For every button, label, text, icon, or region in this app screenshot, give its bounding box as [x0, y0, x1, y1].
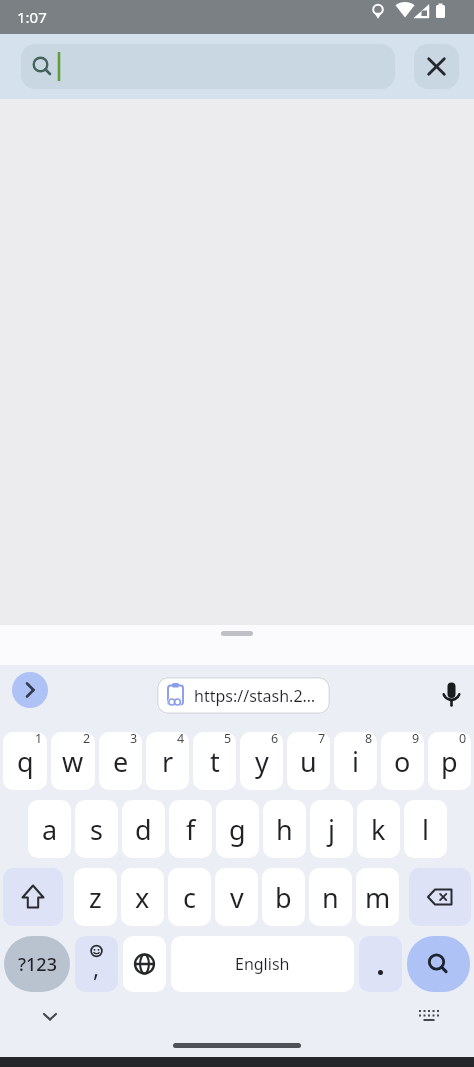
button[interactable]: u — [287, 732, 330, 790]
button[interactable] — [359, 936, 402, 992]
staticText: k — [371, 811, 386, 848]
staticText: 1:07 — [17, 7, 47, 27]
button[interactable]: c — [168, 868, 211, 926]
staticText: h — [276, 811, 293, 848]
button[interactable]: q — [3, 732, 47, 790]
staticText: 1 — [35, 732, 43, 747]
staticText: w — [62, 743, 84, 780]
button[interactable] — [12, 672, 48, 708]
button[interactable]: i — [334, 732, 377, 790]
staticText: v — [230, 879, 244, 916]
button[interactable]: h — [263, 800, 306, 858]
button[interactable]: r — [146, 732, 189, 790]
button[interactable] — [414, 44, 459, 89]
button[interactable]: y — [240, 732, 283, 790]
staticText: ?123 — [18, 952, 57, 977]
button[interactable]: https://stash.2… — [157, 677, 330, 714]
button[interactable]: l — [404, 800, 447, 858]
staticText: 5 — [224, 732, 232, 747]
button[interactable] — [409, 868, 471, 926]
button[interactable]: x — [121, 868, 164, 926]
button[interactable] — [411, 1004, 439, 1026]
button[interactable]: z — [74, 868, 117, 926]
button[interactable] — [21, 44, 395, 89]
button[interactable]: k — [357, 800, 400, 858]
staticText: 3 — [130, 732, 138, 747]
staticText: m — [365, 879, 391, 916]
button[interactable]: m — [356, 868, 399, 926]
staticText: 0 — [459, 732, 467, 747]
staticText: x — [135, 879, 150, 916]
button[interactable]: ?123 — [4, 936, 70, 992]
staticText: t — [210, 743, 220, 780]
button[interactable]: g — [216, 800, 259, 858]
button[interactable]: n — [309, 868, 352, 926]
button[interactable]: English — [171, 936, 354, 992]
staticText: 9 — [412, 732, 420, 747]
staticText: 8 — [365, 732, 373, 747]
button[interactable]: b — [262, 868, 305, 926]
button[interactable]: d — [122, 800, 165, 858]
staticText: j — [328, 811, 335, 848]
staticText: English — [235, 953, 290, 975]
button[interactable]: v — [215, 868, 258, 926]
staticText: o — [394, 743, 411, 780]
staticText: q — [17, 743, 34, 780]
button[interactable]: o — [381, 732, 424, 790]
staticText: g — [229, 811, 246, 848]
staticText: f — [186, 811, 196, 848]
button[interactable] — [3, 868, 63, 926]
staticText: a — [42, 811, 58, 848]
staticText: l — [422, 811, 429, 848]
staticText: https://stash.2… — [194, 685, 316, 707]
staticText: d — [135, 811, 152, 848]
button[interactable]: a — [28, 800, 71, 858]
button[interactable]: s — [75, 800, 118, 858]
staticText: , — [93, 952, 100, 983]
staticText: 2 — [83, 732, 91, 747]
staticText: 6 — [271, 732, 279, 747]
staticText: r — [162, 743, 174, 780]
staticText: e — [113, 743, 129, 780]
staticText: z — [89, 879, 102, 916]
button[interactable]: w — [51, 732, 95, 790]
button[interactable] — [407, 936, 470, 992]
button[interactable]: , — [75, 936, 118, 992]
staticText: y — [255, 743, 269, 780]
button[interactable]: p — [428, 732, 471, 790]
button[interactable] — [437, 676, 466, 716]
staticText: 7 — [318, 732, 326, 747]
button[interactable] — [123, 936, 166, 992]
button[interactable]: e — [99, 732, 142, 790]
staticText: c — [183, 879, 196, 916]
staticText: 4 — [177, 732, 185, 747]
button[interactable]: t — [193, 732, 236, 790]
staticText: n — [322, 879, 339, 916]
staticText: u — [300, 743, 317, 780]
staticText: s — [90, 811, 103, 848]
staticText: i — [352, 743, 359, 780]
button[interactable]: j — [310, 800, 353, 858]
staticText: p — [441, 743, 458, 780]
button[interactable] — [36, 1006, 64, 1028]
staticText: b — [275, 879, 292, 916]
button[interactable]: f — [169, 800, 212, 858]
